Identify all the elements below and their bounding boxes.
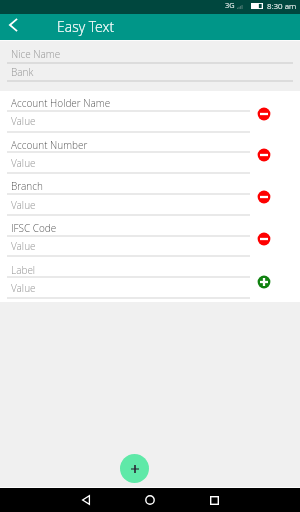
button[interactable]: Remove field: [256, 106, 272, 122]
staticText: Bank: [11, 65, 34, 79]
button[interactable]: Back: [1, 13, 25, 37]
staticText: Easy Text: [57, 17, 115, 36]
staticText: Account Number: [11, 138, 88, 152]
staticText: Value: [11, 114, 36, 128]
button[interactable]: Remove field: [256, 147, 272, 163]
staticText: Value: [11, 281, 36, 295]
staticText: Label: [11, 263, 36, 277]
button[interactable]: Recent apps: [202, 488, 226, 512]
button[interactable]: Home: [138, 488, 162, 512]
button[interactable]: Remove field: [256, 189, 272, 205]
staticText: Value: [11, 156, 36, 170]
staticText: Value: [11, 239, 36, 253]
button[interactable]: Remove field: [256, 231, 272, 247]
staticText: Account Holder Name: [11, 96, 111, 110]
staticText: Branch: [11, 179, 43, 193]
button[interactable]: Back: [74, 488, 98, 512]
staticText: 3G: [225, 0, 235, 10]
button[interactable]: Add entry: [120, 454, 149, 483]
staticText: IFSC Code: [11, 221, 57, 235]
staticText: Nice Name: [11, 47, 61, 61]
button[interactable]: Add field: [256, 274, 272, 290]
staticText: 8:30 am: [267, 0, 296, 11]
staticText: Value: [11, 198, 36, 212]
